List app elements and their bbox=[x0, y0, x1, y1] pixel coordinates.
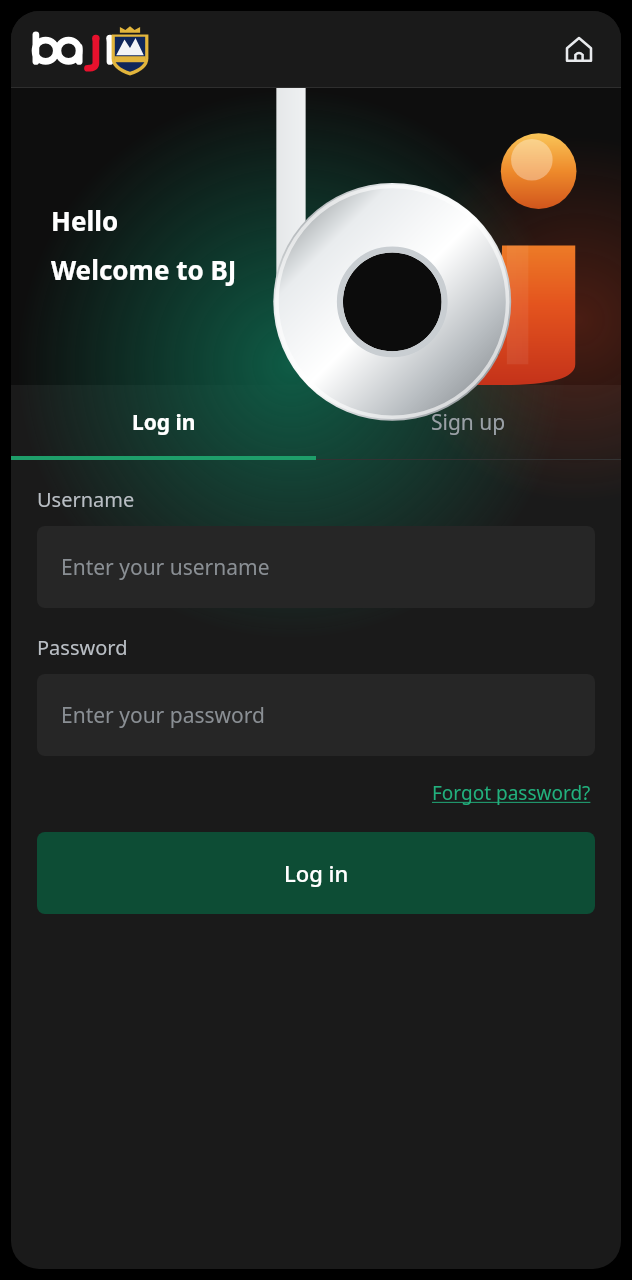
button[interactable]: Log in bbox=[11, 385, 316, 460]
staticText: Username bbox=[37, 486, 135, 513]
button[interactable]: Sign up bbox=[316, 385, 621, 460]
button[interactable]: Enter your password bbox=[37, 674, 595, 756]
staticText: Password bbox=[37, 634, 128, 661]
staticText: Enter your password bbox=[61, 701, 265, 730]
staticText: Hello bbox=[51, 203, 119, 238]
button[interactable]: Forgot password? bbox=[428, 776, 595, 810]
staticText: Welcome to BJ bbox=[51, 252, 237, 287]
button[interactable]: Enter your username bbox=[37, 526, 595, 608]
staticText: Forgot password? bbox=[432, 780, 591, 806]
button[interactable]: Home bbox=[557, 28, 601, 72]
staticText: Log in bbox=[284, 858, 349, 888]
button[interactable]: Log in bbox=[37, 832, 595, 914]
staticText: Log in bbox=[132, 408, 196, 437]
staticText: Enter your username bbox=[61, 553, 270, 582]
staticText: Sign up bbox=[431, 408, 506, 437]
